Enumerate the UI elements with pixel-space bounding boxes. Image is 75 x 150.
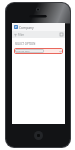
staticText: Company: [19, 25, 34, 29]
button[interactable]: Filter: [14, 33, 25, 37]
button[interactable]: Home: [34, 131, 43, 140]
staticText: Filter: [18, 33, 25, 37]
button[interactable]: Company logo: [14, 25, 18, 29]
button[interactable]: Options: [60, 33, 63, 36]
staticText: Choose item: [16, 50, 30, 53]
staticText: SELECT OPTION: [15, 42, 36, 46]
button[interactable]: Choose item: [15, 48, 62, 54]
